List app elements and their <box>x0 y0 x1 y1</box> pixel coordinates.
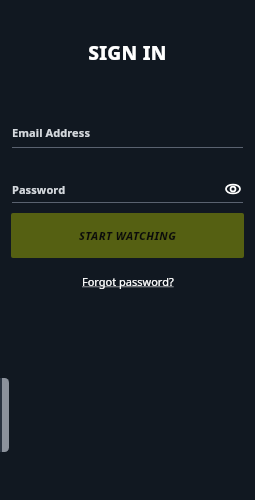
staticText: Forgot password? <box>82 274 174 289</box>
button[interactable]: Show password <box>223 179 243 199</box>
button[interactable]: Forgot password? <box>76 272 180 291</box>
staticText: SIGN IN <box>0 40 255 66</box>
button[interactable]: Password <box>12 182 223 197</box>
button[interactable]: Open navigation drawer <box>0 378 9 452</box>
staticText: Email Address <box>12 125 91 140</box>
staticText: START WATCHING <box>79 228 177 243</box>
button[interactable]: START WATCHING <box>11 213 244 258</box>
button[interactable]: Email Address <box>12 125 243 148</box>
